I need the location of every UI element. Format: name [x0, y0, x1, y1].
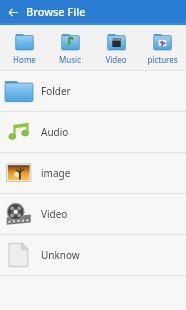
- staticText: Folder: [41, 84, 71, 98]
- button[interactable]: Back: [5, 4, 21, 20]
- staticText: Home: [13, 54, 36, 65]
- button[interactable]: Folder: [0, 71, 186, 112]
- button[interactable]: Home: [2, 31, 46, 65]
- button[interactable]: Video: [94, 31, 138, 65]
- button[interactable]: Music: [48, 31, 92, 65]
- button[interactable]: Audio: [0, 112, 186, 153]
- staticText: Music: [59, 54, 81, 65]
- button[interactable]: pictures: [140, 31, 184, 65]
- staticText: image: [41, 166, 71, 180]
- staticText: Video: [41, 207, 68, 221]
- staticText: Video: [105, 54, 127, 65]
- button[interactable]: image: [0, 153, 186, 194]
- staticText: Browse File: [26, 4, 86, 19]
- button[interactable]: Unknow: [0, 235, 186, 276]
- staticText: pictures: [147, 54, 178, 65]
- staticText: Unknow: [41, 248, 80, 262]
- staticText: Audio: [41, 125, 69, 139]
- button[interactable]: Video: [0, 194, 186, 235]
